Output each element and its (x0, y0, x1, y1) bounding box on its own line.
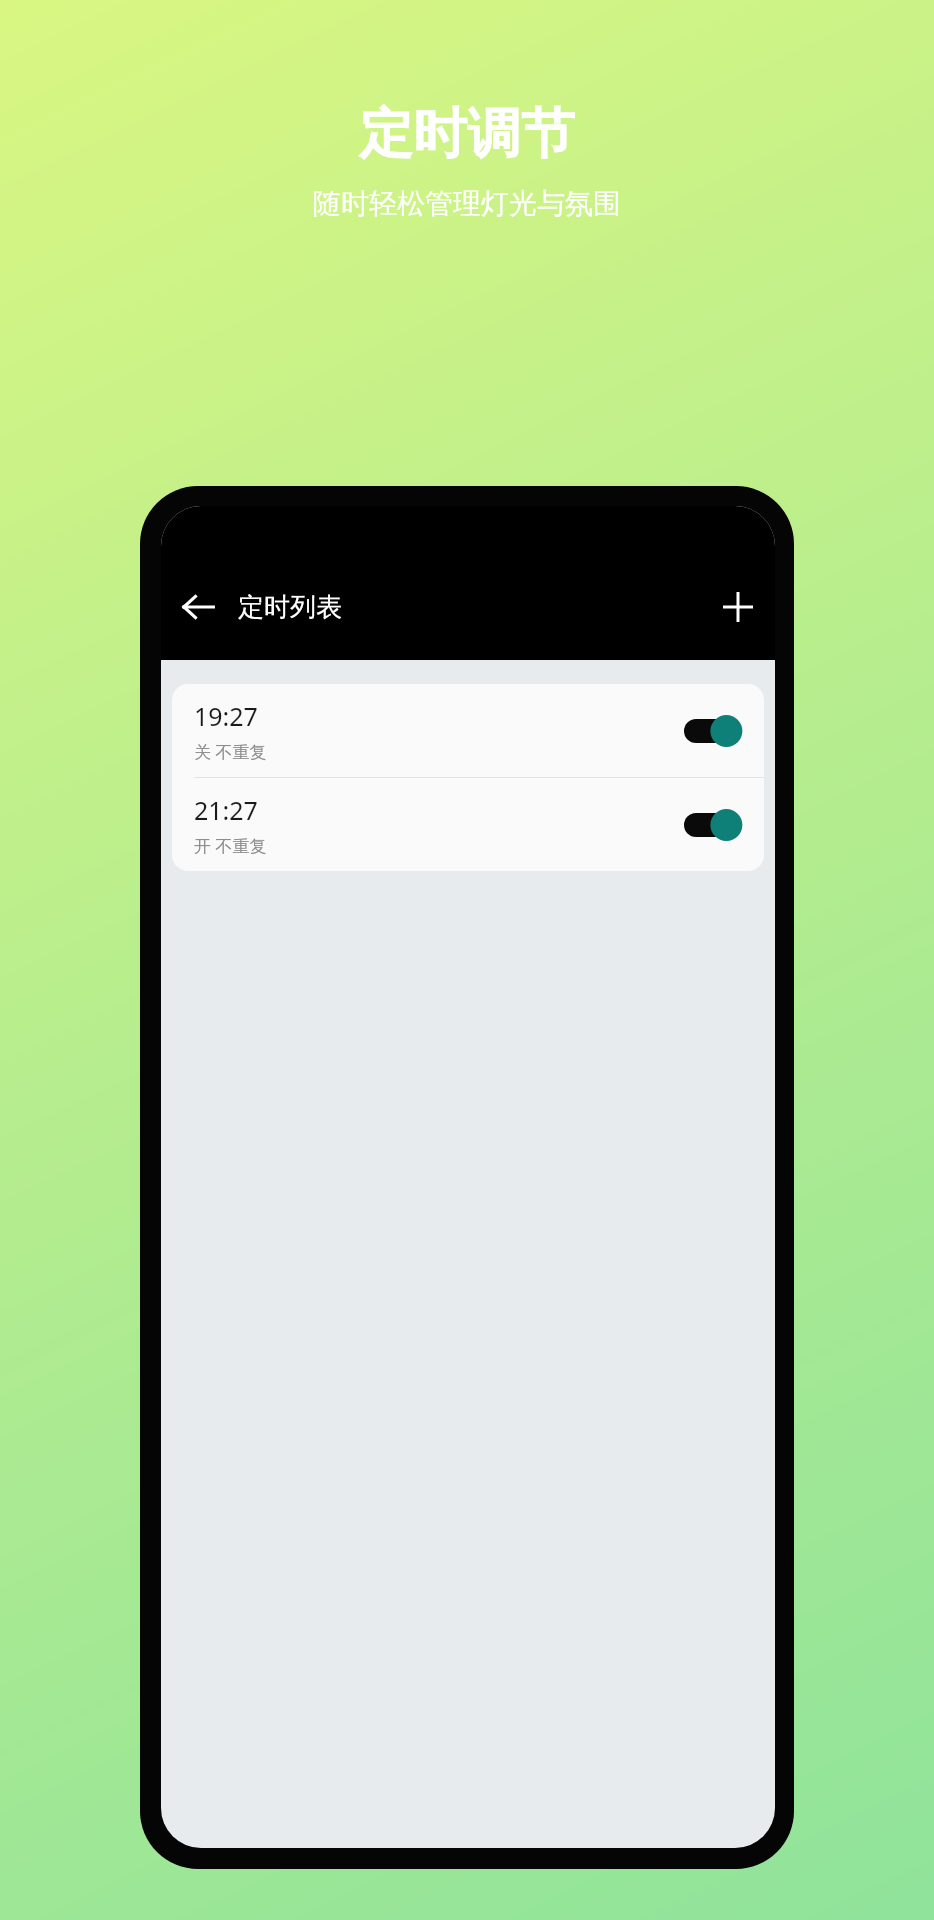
staticText: 定时调节 (359, 100, 575, 168)
staticText: 定时列表 (238, 591, 342, 624)
button[interactable]: 21:27 (172, 778, 764, 871)
button[interactable]: 开关 (684, 805, 742, 845)
staticText: 关 不重复 (194, 740, 267, 763)
staticText: 19:27 (194, 699, 258, 733)
button[interactable]: 添加定时 (707, 576, 769, 638)
staticText: 随时轻松管理灯光与氛围 (313, 186, 621, 221)
staticText: 21:27 (194, 793, 258, 827)
button[interactable]: 开关 (684, 711, 742, 751)
staticText: 开 不重复 (194, 834, 267, 857)
button[interactable]: 返回 (167, 576, 229, 638)
button[interactable]: 19:27 (172, 684, 764, 777)
